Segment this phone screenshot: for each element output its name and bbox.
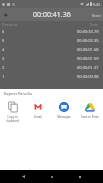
button[interactable]: Back — [19, 172, 28, 181]
button[interactable]: Back — [1, 10, 10, 19]
staticText: 00:00:01.59 — [77, 56, 99, 61]
button[interactable]: 6 — [0, 27, 103, 36]
staticText: Copy to clipboard — [6, 115, 19, 123]
staticText: 2 — [2, 65, 5, 70]
staticText: Messages — [57, 115, 71, 119]
button[interactable]: Gmail — [25, 100, 51, 120]
staticText: Position — [2, 22, 18, 27]
button[interactable]: 2 — [0, 63, 103, 72]
button[interactable]: 3 — [0, 54, 103, 63]
staticText: 00:00:41.36 — [33, 10, 71, 20]
staticText: 1 — [2, 74, 5, 79]
button[interactable]: 1 — [0, 72, 103, 81]
button[interactable]: 4 — [0, 45, 103, 54]
staticText: 3 — [2, 56, 5, 61]
staticText: 00:00:01.37 — [77, 65, 99, 70]
staticText: Save to Drive — [81, 115, 99, 119]
staticText: Export Results — [4, 91, 33, 97]
button[interactable]: Recents — [75, 172, 84, 181]
button[interactable]: Save to Drive — [77, 100, 103, 120]
staticText: 00:00:33.79 — [77, 29, 99, 34]
staticText: 4 — [2, 47, 5, 52]
staticText: Reset — [92, 13, 101, 17]
button[interactable]: Home — [47, 172, 56, 181]
staticText: 00:00:02.35 — [77, 38, 99, 43]
button[interactable]: Copy to clipboard — [0, 100, 25, 124]
staticText: Gmail — [34, 115, 42, 119]
staticText: 6:43 — [93, 2, 101, 7]
button[interactable]: 5 — [0, 36, 103, 45]
staticText: 6 — [2, 29, 5, 34]
staticText: 5 — [2, 38, 5, 43]
staticText: 00:00:00.98 — [77, 74, 99, 79]
staticText: Time — [89, 22, 99, 27]
staticText: 00:00:01.68 — [77, 47, 99, 52]
button[interactable]: Messages — [51, 100, 77, 120]
button[interactable]: Reset — [88, 10, 103, 20]
